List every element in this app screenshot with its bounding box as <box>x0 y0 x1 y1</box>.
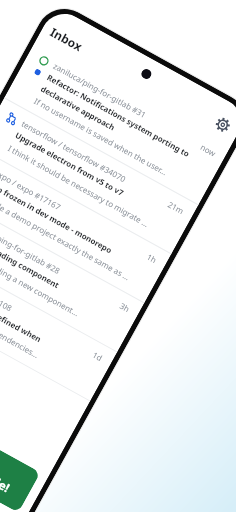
staticText: process.env is undefined when <box>0 277 43 345</box>
staticText: zaniluca/ping-for-gitlab #28 <box>0 216 63 276</box>
staticText: 1h <box>145 251 159 265</box>
staticText: Refactor: Notifications system porting t… <box>39 72 193 171</box>
staticText: Upgrade electron from v5 to v7 <box>13 130 126 199</box>
staticText: 1d <box>91 349 105 363</box>
button[interactable]: expo / expo #17167 <box>0 147 171 303</box>
staticText: After updating all dependencies... <box>0 289 41 360</box>
staticText: now <box>199 141 218 159</box>
staticText: Inbox <box>48 24 86 55</box>
button[interactable]: tensorflow / tensorflow #34070 <box>0 98 198 254</box>
staticText: 3h <box>118 300 132 314</box>
staticText: 21m <box>166 198 186 216</box>
button[interactable]: zaniluca/ping-for-gitlab #28 <box>0 196 144 352</box>
staticText: zaniluca/ping-for-gitlab #31 <box>52 60 149 120</box>
button[interactable]: zaniluca/ping-for-gitlab #31 <box>4 40 230 205</box>
staticText: tensorflow / tensorflow #34070 <box>20 118 128 184</box>
button[interactable]: Settings <box>209 110 236 138</box>
staticText: If no username is saved when the user... <box>32 95 170 178</box>
staticText: I think it should be necessary to migrat… <box>6 142 153 230</box>
staticText: I consider adding a new component... <box>0 240 82 319</box>
staticText: prisma / prisma #108 <box>0 265 15 314</box>
staticText: Welcome to GitHub Mobile! <box>0 402 13 495</box>
staticText: Error on loading component <box>0 228 61 291</box>
staticText: I made a demo project exactly the same a… <box>0 191 132 283</box>
button[interactable]: prisma / prisma #108 <box>0 245 117 401</box>
staticText: expo / expo #17167 <box>0 167 63 212</box>
button[interactable]: Welcome to GitHub Mobile! <box>0 374 41 512</box>
staticText: App frozen in dev mode - monorepo <box>0 179 114 256</box>
